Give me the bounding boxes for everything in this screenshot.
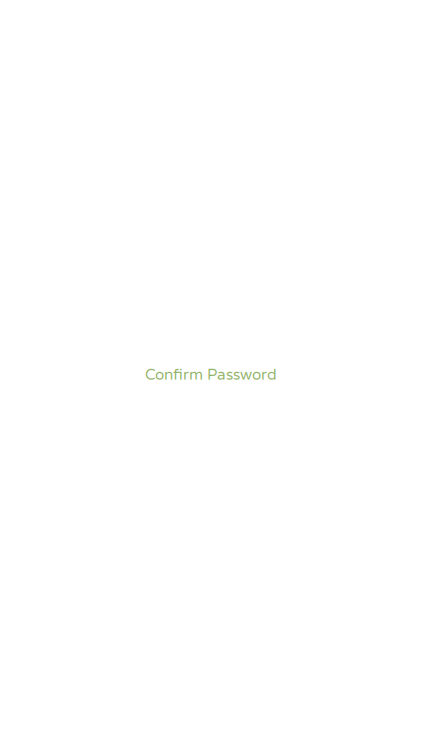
staticText: Confirm Password [145,366,277,384]
